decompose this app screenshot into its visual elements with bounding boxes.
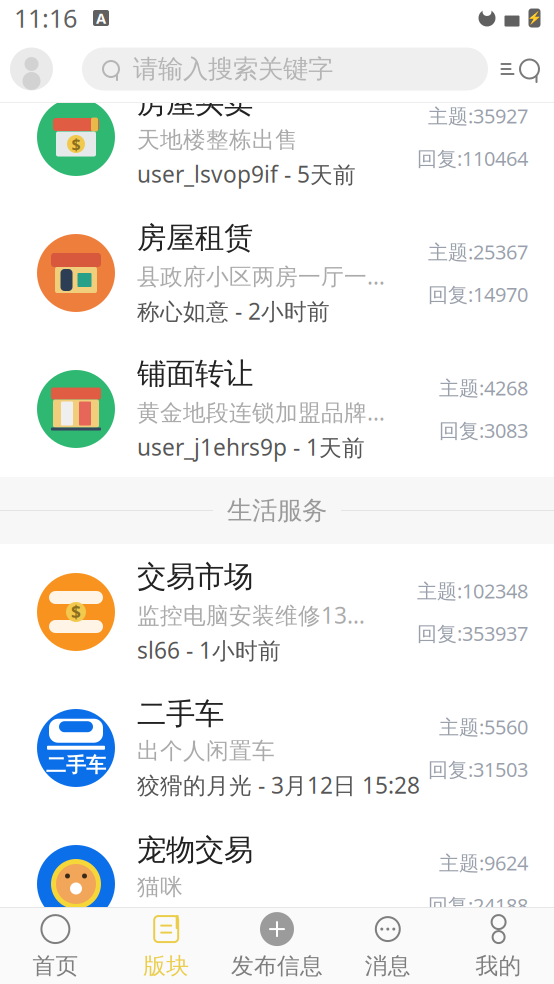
staticText: 生活服务 [227,495,327,526]
staticText: user_lsvop9if - 5天前 [137,159,356,189]
staticText: 交易市场 [137,559,253,595]
staticText: 主题:4268 [439,374,528,401]
staticText: 首页 [32,952,78,980]
staticText: 房屋租赁 [137,220,253,256]
staticText: 监控电脑安装维修13… [137,600,365,630]
staticText: 回复:110464 [417,145,528,172]
button[interactable]: 高级搜索 [488,45,554,93]
staticText: 回复:3083 [439,417,528,444]
button[interactable]: 发布信息 [222,908,332,984]
button[interactable]: 请输入搜索关键字 [82,47,488,90]
staticText: ⚡ [527,11,542,25]
staticText: A [96,8,106,28]
staticText: sl66 - 1小时前 [137,635,281,665]
staticText: 主题:102348 [417,577,528,604]
staticText: 主题:5560 [439,713,528,740]
staticText: 回复:14970 [428,281,528,308]
button[interactable]: 宠物交易 [0,816,554,952]
staticText: 版块 [143,952,189,980]
button[interactable]: 房屋租赁 [0,205,554,341]
button[interactable]: 铺面转让 [0,341,554,477]
staticText: 发布信息 [231,952,323,980]
staticText: user_j1ehrs9p - 1天前 [137,432,365,462]
button[interactable]: 首页 [0,908,111,984]
staticText: 宠物交易 [137,832,253,868]
staticText: 房屋买卖 [137,85,253,121]
staticText: $ [71,600,81,623]
button[interactable]: 我的 [443,908,554,984]
staticText: 消息 [365,952,411,980]
staticText: 二手车 [46,753,106,777]
button[interactable]: $ [0,69,554,205]
staticText: 铺面转让 [137,356,253,392]
staticText: $ [71,133,80,155]
staticText: 出个人闲置车 [137,737,275,765]
staticText: 黄金地段连锁加盟品牌… [137,397,385,427]
staticText: 回复:31503 [428,756,528,783]
button[interactable]: 版块 [111,908,222,984]
staticText: 回复:353937 [417,620,528,647]
staticText: 11:16 [14,1,77,35]
staticText: user_ap0m2k - 2天前 [137,906,358,936]
staticText: 称心如意 - 2小时前 [137,296,330,326]
staticText: 主题:9624 [439,849,528,876]
button[interactable]: 个人中心 [10,47,53,90]
staticText: 县政府小区两房一厅一… [137,261,385,291]
staticText: 我的 [476,952,522,980]
staticText: 请输入搜索关键字 [133,53,333,84]
staticText: 回复:24188 [428,892,528,919]
button[interactable]: 消息 [332,908,443,984]
staticText: 二手车 [137,696,224,732]
staticText: 主题:25367 [428,238,528,265]
button[interactable]: 二手车 [0,680,554,816]
button[interactable]: $ [0,544,554,680]
staticText: 主题:35927 [428,102,528,129]
staticText: 狡猾的月光 - 3月12日 15:28 [137,770,420,800]
staticText: 天地楼整栋出售 [137,126,298,154]
staticText: 猫咪 [137,873,183,901]
